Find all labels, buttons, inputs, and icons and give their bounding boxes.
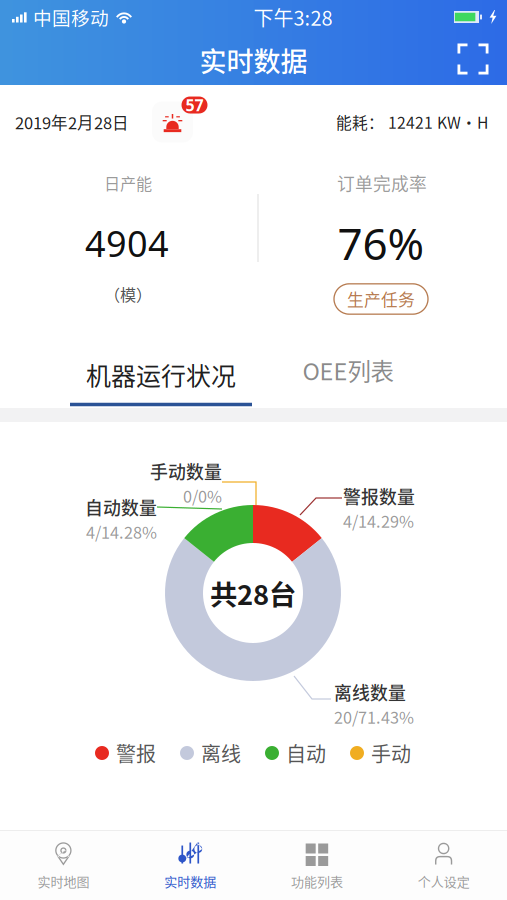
- staticText: （模）: [104, 282, 152, 306]
- button[interactable]: 报警: [150, 95, 206, 149]
- staticText: 警报数量: [343, 483, 415, 509]
- staticText: 实时数据: [164, 871, 216, 890]
- staticText: 4904: [85, 219, 169, 267]
- staticText: OEE列表: [302, 353, 393, 387]
- staticText: 机器运行状况: [86, 357, 236, 393]
- staticText: 自动数量: [85, 494, 157, 520]
- staticText: 离线: [201, 738, 241, 767]
- staticText: 能耗： 12421 KW·H: [336, 111, 488, 133]
- button[interactable]: 扫一扫: [457, 43, 488, 74]
- button[interactable]: 实时地图: [0, 830, 127, 900]
- staticText: 中国移动: [33, 3, 109, 30]
- staticText: 实时数据: [199, 40, 307, 80]
- button[interactable]: 个人设定: [380, 830, 507, 900]
- staticText: 4/14.28%: [86, 520, 157, 543]
- staticText: 共28台: [210, 573, 296, 613]
- button[interactable]: 功能列表: [253, 830, 380, 900]
- staticText: 订单完成率: [337, 170, 427, 196]
- button[interactable]: 机器运行状况: [70, 357, 252, 407]
- staticText: 手动数量: [150, 458, 222, 484]
- staticText: 功能列表: [291, 871, 343, 890]
- staticText: 下午3:28: [253, 2, 332, 31]
- staticText: 警报: [116, 738, 156, 767]
- staticText: 手动: [371, 738, 411, 767]
- staticText: 20/71.43%: [334, 705, 414, 728]
- staticText: 76%: [337, 214, 424, 272]
- staticText: 实时地图: [37, 871, 89, 890]
- staticText: 4/14.29%: [343, 509, 414, 532]
- staticText: 离线数量: [334, 679, 406, 705]
- staticText: 自动: [286, 738, 326, 767]
- button[interactable]: 实时数据: [127, 830, 254, 900]
- staticText: 日产能: [104, 171, 152, 195]
- staticText: 2019年2月28日: [15, 110, 129, 134]
- button[interactable]: 生产任务: [334, 284, 428, 314]
- button[interactable]: OEE列表: [288, 350, 407, 390]
- staticText: 生产任务: [347, 287, 415, 311]
- staticText: 0/0%: [183, 484, 222, 507]
- staticText: 57: [185, 94, 203, 116]
- staticText: 个人设定: [418, 871, 470, 890]
